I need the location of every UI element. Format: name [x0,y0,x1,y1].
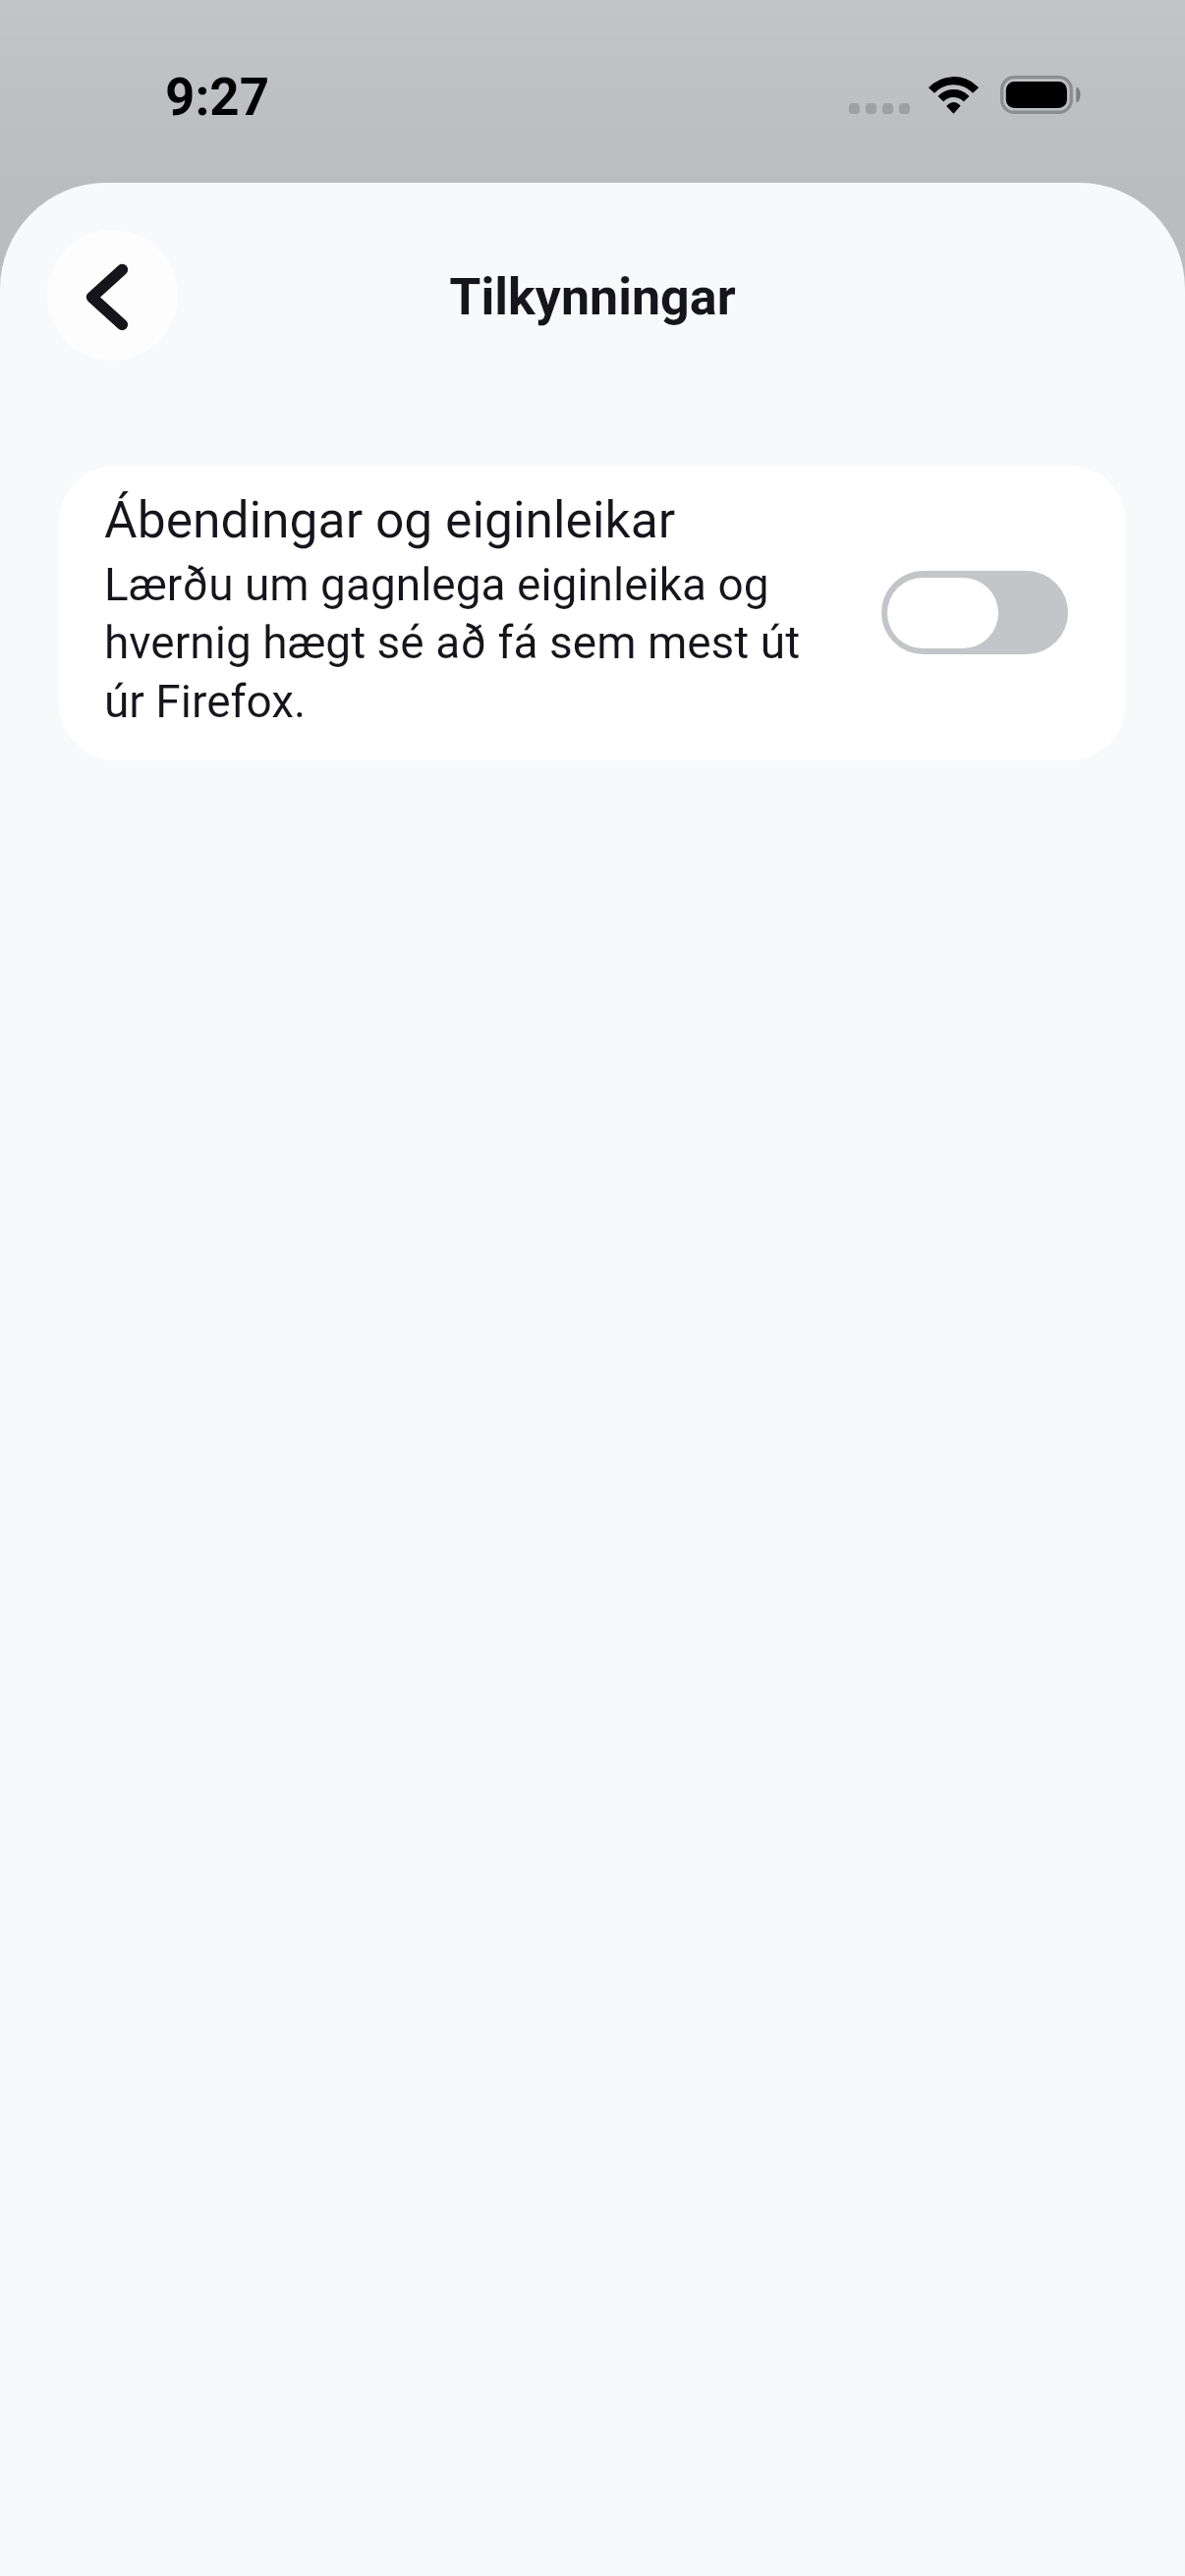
button[interactable]: Back [47,230,178,361]
staticText: 9:27 [165,67,270,128]
button[interactable]: Ábendingar og eiginleikar [59,466,1126,760]
button[interactable] [881,571,1068,654]
staticText: Lærðu um gagnlega eiginleika og hvernig … [104,558,831,728]
staticText: Tilkynningar [0,267,1185,327]
staticText: Ábendingar og eiginleikar [104,490,831,549]
